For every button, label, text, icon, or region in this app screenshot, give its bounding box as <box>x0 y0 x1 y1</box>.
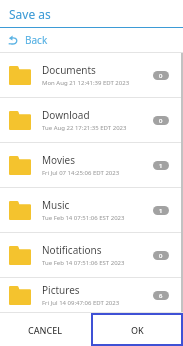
button[interactable]: Back <box>0 28 183 52</box>
staticText: Tue Feb 14 07:51:06 EST 2023 <box>42 259 125 267</box>
staticText: Movies <box>42 153 76 167</box>
staticText: Fri Jul 14 09:47:06 EDT 2023 <box>42 299 120 307</box>
staticText: Pictures <box>42 283 80 297</box>
staticText: CANCEL <box>28 324 63 336</box>
staticText: OK <box>131 324 144 336</box>
staticText: Documents <box>42 63 96 77</box>
button[interactable]: Notifications <box>0 233 183 277</box>
staticText: Notifications <box>42 243 102 257</box>
staticText: 0 <box>159 72 163 80</box>
staticText: 0 <box>159 252 163 260</box>
staticText: Fri Jul 07 14:25:06 EDT 2023 <box>42 169 120 177</box>
staticText: 1 <box>159 162 163 170</box>
staticText: Tue Aug 22 17:21:35 EDT 2023 <box>42 124 127 132</box>
staticText: 6 <box>159 292 163 300</box>
staticText: Download <box>42 108 90 122</box>
staticText: Back <box>25 33 48 47</box>
staticText: 1 <box>159 207 163 215</box>
staticText: Mon Aug 21 12:41:39 EDT 2023 <box>42 79 130 87</box>
button[interactable]: Music <box>0 188 183 232</box>
button[interactable]: OK <box>91 313 183 346</box>
staticText: Music <box>42 198 70 212</box>
other: Back <box>8 35 19 46</box>
button[interactable]: Movies <box>0 143 183 187</box>
staticText: Tue Feb 14 07:51:06 EST 2023 <box>42 214 125 222</box>
button[interactable]: CANCEL <box>0 313 91 346</box>
button[interactable]: Download <box>0 98 183 142</box>
button[interactable]: Pictures <box>0 278 183 312</box>
staticText: 0 <box>159 117 163 125</box>
staticText: Save as <box>9 6 51 22</box>
button[interactable]: Documents <box>0 53 183 97</box>
